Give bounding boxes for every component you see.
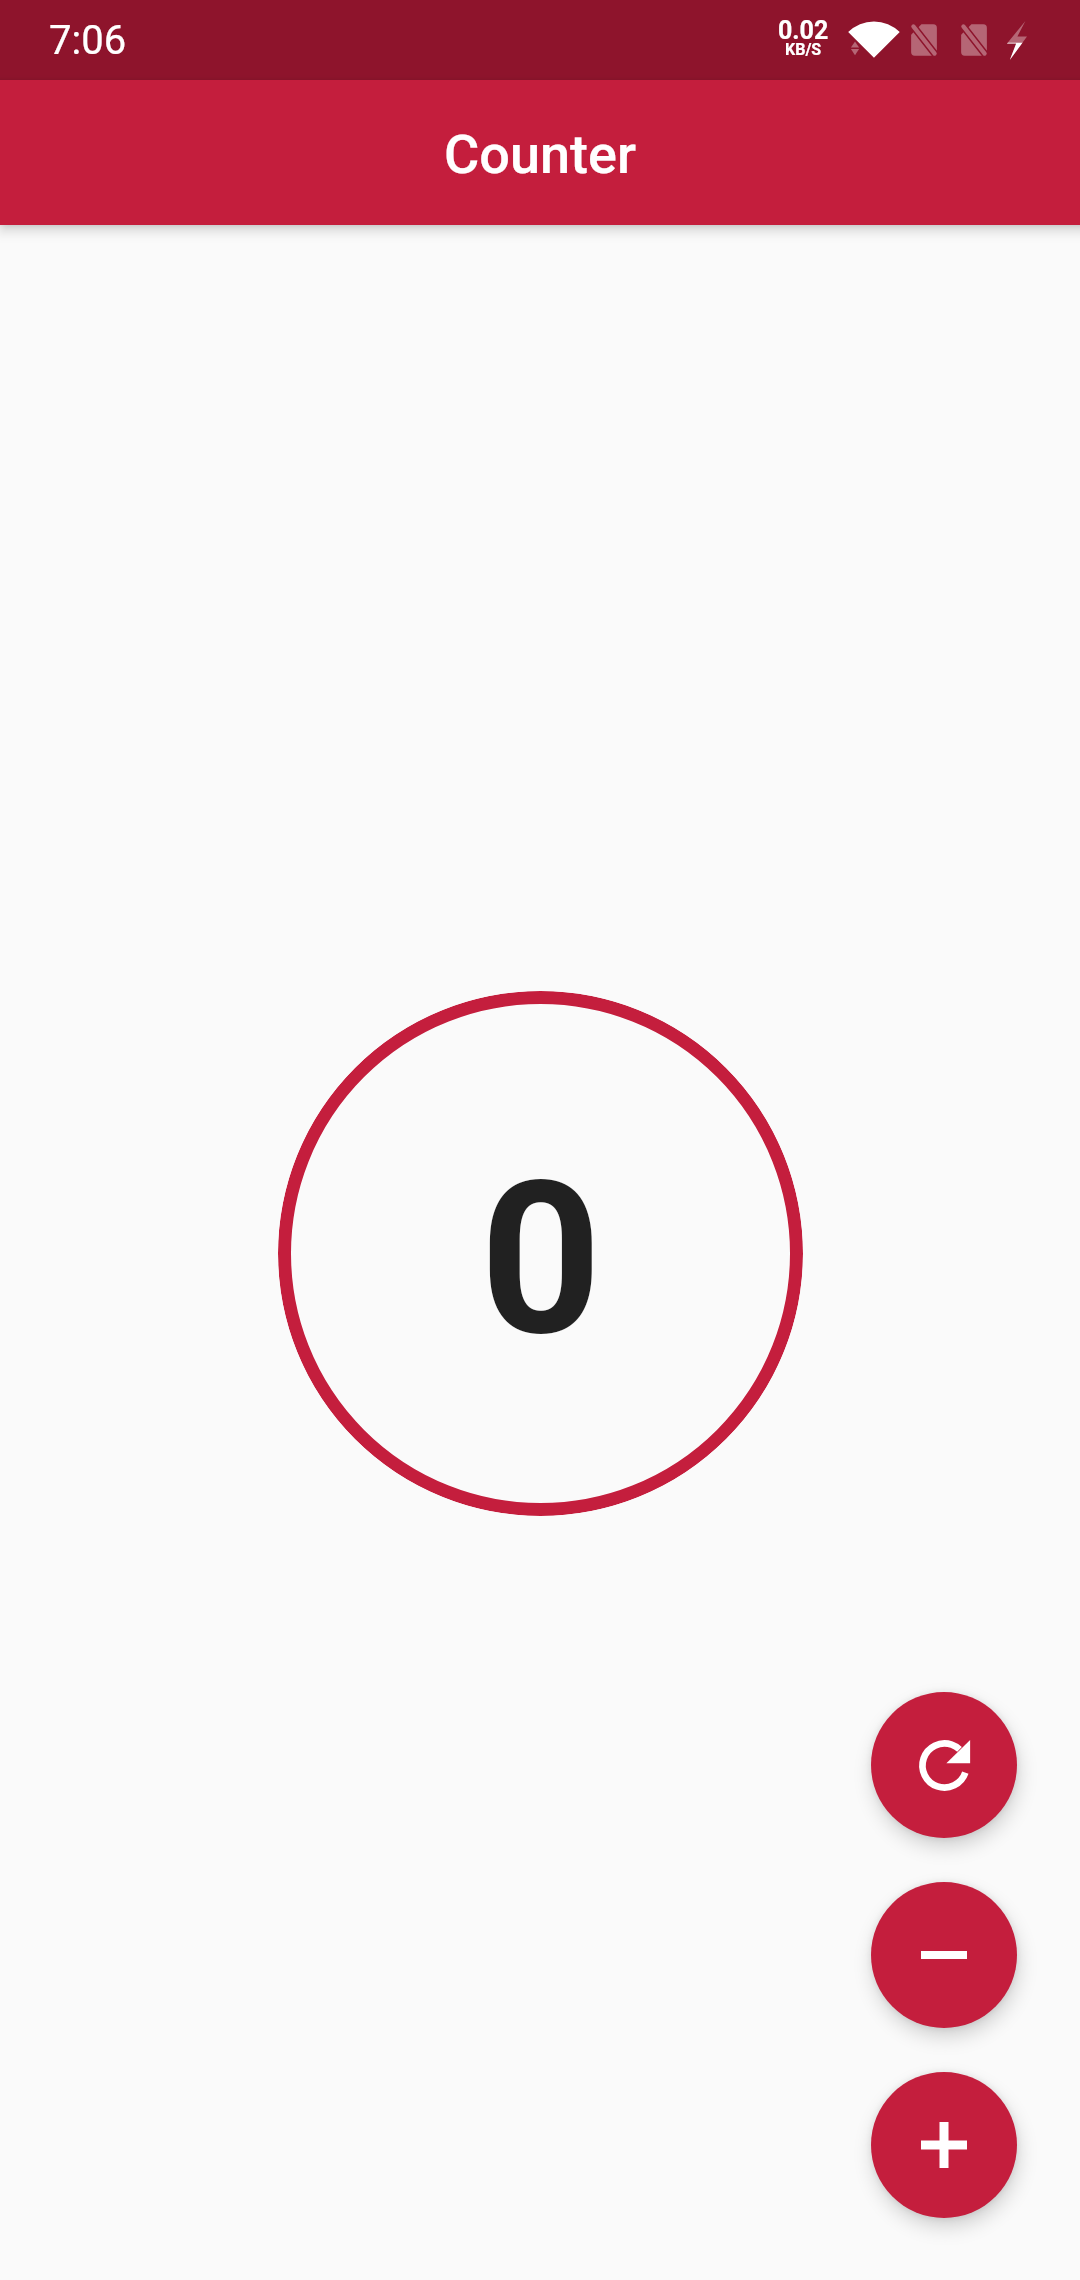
button[interactable]: Increment (871, 2072, 1017, 2218)
button[interactable]: Reset counter (871, 1692, 1017, 1838)
staticText: 0 (480, 1135, 602, 1383)
staticText: Counter (444, 123, 636, 186)
staticText: 0.02 (778, 16, 829, 45)
staticText: 7:06 (49, 17, 127, 64)
button[interactable]: Counter value 0 (278, 991, 803, 1516)
staticText: KB/S (785, 40, 822, 59)
button[interactable]: Decrement (871, 1882, 1017, 2028)
